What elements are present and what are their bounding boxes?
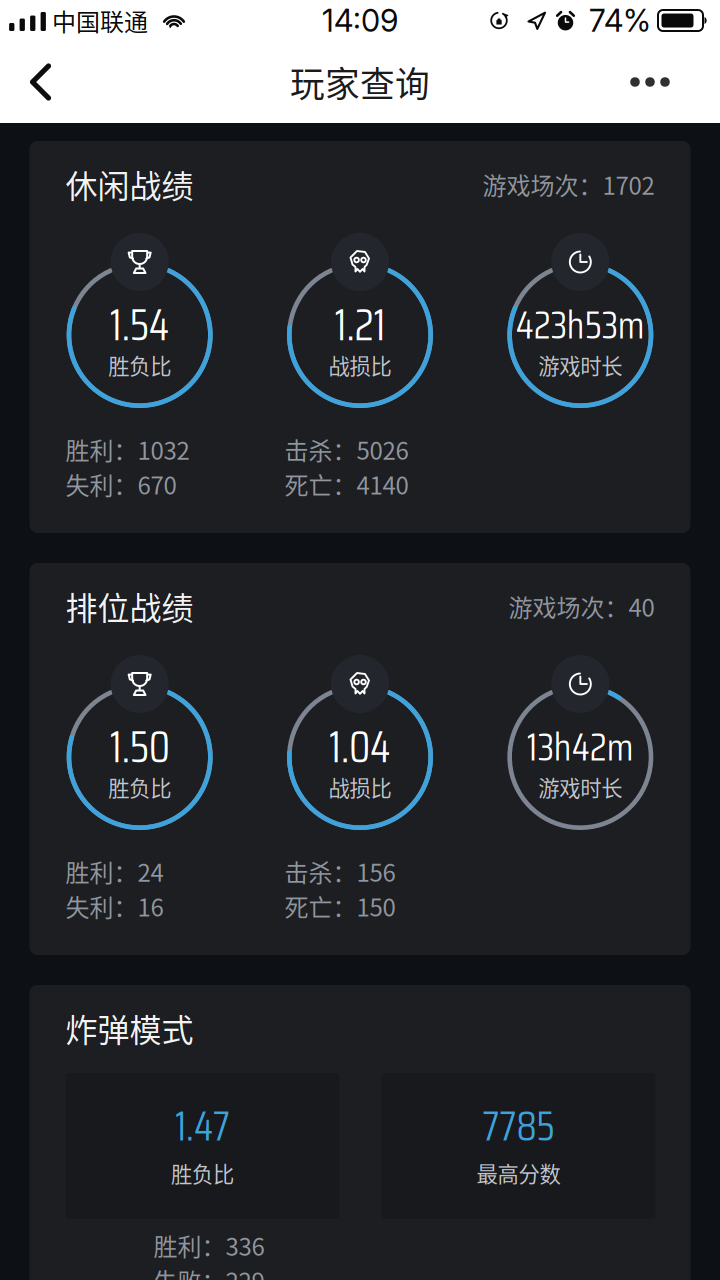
staticText: 失败：229 — [153, 1263, 264, 1280]
staticText: 游戏时长 — [538, 772, 622, 802]
staticText: 13h42m — [527, 717, 634, 777]
staticText: 1.54 — [110, 290, 170, 360]
button[interactable]: Back — [0, 51, 74, 113]
staticText: 游戏时长 — [538, 350, 622, 380]
staticText: 排位战绩 — [65, 583, 193, 629]
staticText: 14:09 — [322, 2, 398, 39]
button[interactable]: More — [608, 50, 720, 114]
staticText: 死亡：4140 — [284, 467, 408, 502]
staticText: 胜负比 — [108, 350, 171, 380]
staticText: 中国联通 — [52, 3, 148, 38]
staticText: 胜利：1032 — [65, 432, 189, 467]
staticText: 炸弹模式 — [65, 1005, 193, 1051]
staticText: 死亡：150 — [284, 889, 395, 924]
staticText: 击杀：156 — [284, 854, 395, 889]
staticText: 最高分数 — [476, 1158, 560, 1188]
staticText: 1.47 — [175, 1093, 230, 1159]
staticText: 1.21 — [334, 290, 385, 360]
staticText: 胜利：24 — [65, 854, 163, 889]
staticText: 胜利：336 — [153, 1228, 264, 1263]
staticText: 7785 — [482, 1093, 554, 1159]
staticText: 423h53m — [516, 295, 645, 355]
staticText: 失利：670 — [65, 467, 176, 502]
staticText: 1.50 — [110, 712, 170, 782]
staticText: 战损比 — [328, 772, 391, 802]
staticText: 战损比 — [328, 350, 391, 380]
staticText: 休闲战绩 — [65, 161, 193, 207]
staticText: 游戏场次：1702 — [482, 167, 654, 202]
staticText: 1.04 — [329, 712, 391, 782]
staticText: 74% — [589, 2, 651, 39]
staticText: 击杀：5026 — [284, 432, 408, 467]
staticText: 游戏场次：40 — [508, 589, 654, 624]
staticText: 胜负比 — [171, 1158, 234, 1188]
staticText: 失利：16 — [65, 889, 163, 924]
staticText: 胜负比 — [108, 772, 171, 802]
staticText: 玩家查询 — [290, 57, 430, 107]
